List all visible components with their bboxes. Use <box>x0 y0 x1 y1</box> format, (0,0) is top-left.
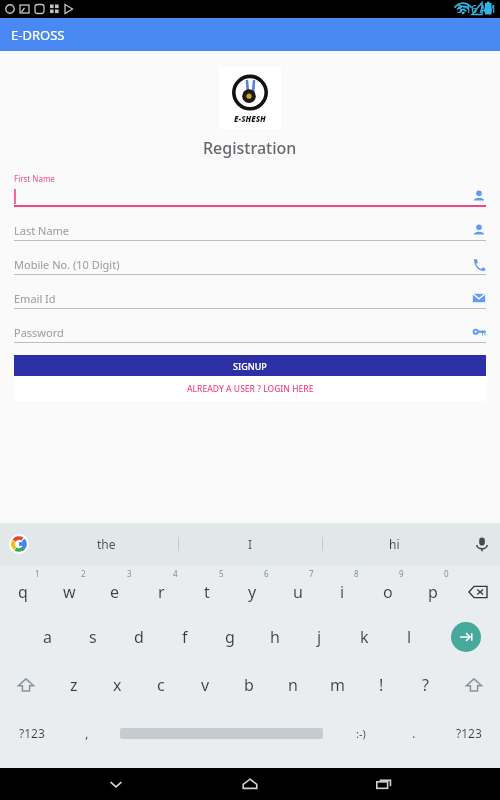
staticText: f <box>182 626 188 648</box>
staticText: the <box>97 536 116 552</box>
staticText: x <box>113 674 122 696</box>
button[interactable]: First Name <box>14 173 486 207</box>
button[interactable]: a <box>24 613 70 661</box>
button[interactable]: u <box>275 565 320 613</box>
button[interactable]: x <box>95 661 139 709</box>
button[interactable]: m <box>315 661 359 709</box>
staticText: 0 <box>444 568 449 579</box>
staticText: w <box>63 581 76 603</box>
button[interactable]: , <box>63 709 111 757</box>
staticText: :-) <box>356 726 366 741</box>
button[interactable]: Space <box>111 709 332 757</box>
button[interactable]: Email Id <box>14 288 486 309</box>
staticText: o <box>383 581 393 603</box>
staticText: 3 <box>127 568 132 579</box>
button[interactable]: :-) <box>332 709 390 757</box>
staticText: E-SHESH <box>234 113 266 124</box>
button[interactable]: Recent apps <box>366 768 402 800</box>
staticText: First Name <box>14 173 55 184</box>
staticText: k <box>360 626 369 648</box>
staticText: Last Name <box>14 223 70 238</box>
button[interactable]: n <box>271 661 315 709</box>
button[interactable]: Last Name <box>14 220 486 241</box>
staticText: 1 <box>35 568 40 579</box>
staticText: h <box>270 626 280 648</box>
button[interactable]: t <box>184 565 230 613</box>
button[interactable]: . <box>390 709 438 757</box>
button[interactable]: r <box>138 565 184 613</box>
button[interactable]: d <box>116 613 162 661</box>
button[interactable]: Home <box>232 768 268 800</box>
staticText: ! <box>379 674 384 696</box>
staticText: j <box>317 626 322 648</box>
button[interactable]: Shift <box>447 661 500 709</box>
button[interactable]: l <box>387 613 432 661</box>
staticText: s <box>89 626 97 648</box>
button[interactable]: ?123 <box>0 709 63 757</box>
button[interactable]: p <box>410 565 455 613</box>
button[interactable]: E-DROSS <box>0 18 500 51</box>
staticText: . <box>412 724 416 742</box>
button[interactable]: ?123 <box>438 709 500 757</box>
staticText: 3:16 AM <box>457 2 496 16</box>
button[interactable]: Next <box>432 613 500 661</box>
staticText: Password <box>14 325 64 340</box>
button[interactable]: k <box>342 613 387 661</box>
button[interactable]: o <box>365 565 410 613</box>
button[interactable]: Backspace <box>455 565 500 613</box>
staticText: l <box>407 626 412 648</box>
button[interactable]: s <box>70 613 116 661</box>
staticText: Email Id <box>14 291 56 306</box>
button[interactable]: h <box>252 613 297 661</box>
button[interactable]: ALREADY A USER ? LOGIN HERE <box>14 376 486 401</box>
staticText: m <box>330 674 345 696</box>
staticText: e <box>110 581 120 603</box>
staticText: Mobile No. (10 Digit) <box>14 257 120 272</box>
button[interactable]: I <box>179 523 322 565</box>
staticText: hi <box>389 536 400 552</box>
staticText: ? <box>422 674 429 696</box>
button[interactable]: Shift <box>0 661 52 709</box>
button[interactable]: y <box>230 565 275 613</box>
button[interactable]: f <box>162 613 207 661</box>
staticText: ?123 <box>19 725 45 741</box>
button[interactable]: Google <box>8 533 30 555</box>
button[interactable]: Password <box>14 322 486 343</box>
button[interactable]: SIGNUP <box>14 355 486 376</box>
button[interactable]: the <box>34 523 178 565</box>
staticText: b <box>244 674 254 696</box>
button[interactable]: ! <box>359 661 403 709</box>
staticText: , <box>85 724 89 742</box>
staticText: 9 <box>399 568 404 579</box>
button[interactable]: v <box>183 661 227 709</box>
staticText: t <box>204 581 210 603</box>
button[interactable]: w <box>46 565 92 613</box>
button[interactable]: g <box>207 613 252 661</box>
button[interactable]: c <box>139 661 183 709</box>
staticText: n <box>288 674 298 696</box>
staticText: 6 <box>264 568 269 579</box>
button[interactable]: i <box>320 565 365 613</box>
staticText: d <box>134 626 144 648</box>
staticText: 5 <box>219 568 224 579</box>
staticText: E-DROSS <box>11 26 65 44</box>
button[interactable]: Voice input <box>472 534 492 554</box>
button[interactable]: Mobile No. (10 Digit) <box>14 254 486 275</box>
staticText: a <box>43 626 52 648</box>
button[interactable]: b <box>227 661 271 709</box>
button[interactable]: q <box>0 565 46 613</box>
staticText: I <box>248 536 253 552</box>
staticText: y <box>248 581 257 603</box>
button[interactable]: j <box>297 613 342 661</box>
staticText: 4 <box>173 568 178 579</box>
staticText: 2 <box>81 568 86 579</box>
button[interactable]: e <box>92 565 138 613</box>
button[interactable]: z <box>52 661 95 709</box>
button[interactable]: ? <box>403 661 447 709</box>
staticText: ?123 <box>456 725 482 741</box>
staticText: c <box>157 674 165 696</box>
staticText: z <box>70 674 78 696</box>
button[interactable]: hi <box>323 523 466 565</box>
staticText: 8 <box>354 568 359 579</box>
button[interactable]: Hide keyboard <box>98 768 134 800</box>
